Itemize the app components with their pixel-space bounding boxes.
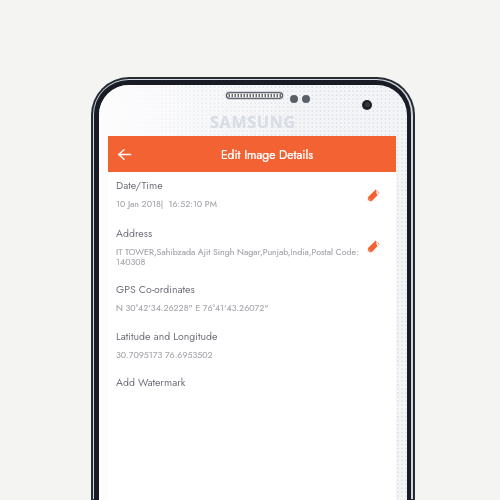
staticText: IT TOWER,Sahibzada Ajit Singh Nagar,Punj… (116, 246, 359, 259)
staticText: 140308 (116, 256, 146, 269)
staticText: 10 Jan 2018| 16:52:10 PM (116, 198, 217, 211)
button[interactable]: Latitude and Longitude (108, 329, 396, 367)
button[interactable]: Add Watermark (108, 375, 396, 403)
staticText: Address (116, 226, 153, 241)
staticText: Latitude and Longitude (116, 329, 218, 344)
button[interactable]: Back (108, 136, 142, 172)
staticText: Add Watermark (116, 375, 186, 390)
button[interactable]: Date/Time (108, 178, 396, 216)
staticText: Edit Image Details (123, 146, 411, 163)
button[interactable]: Address (108, 226, 396, 274)
staticText: 30.7095173 76.6953502 (116, 349, 213, 362)
button[interactable]: GPS Co-ordinates (108, 282, 396, 320)
staticText: Date/Time (116, 178, 163, 193)
staticText: SAMSUNG (210, 111, 296, 133)
button[interactable]: Edit (360, 235, 384, 259)
staticText: GPS Co-ordinates (116, 282, 195, 297)
staticText: N 30°42'34.26228" E 76°41'43.26072" (116, 302, 269, 315)
button[interactable]: Edit (360, 184, 384, 208)
